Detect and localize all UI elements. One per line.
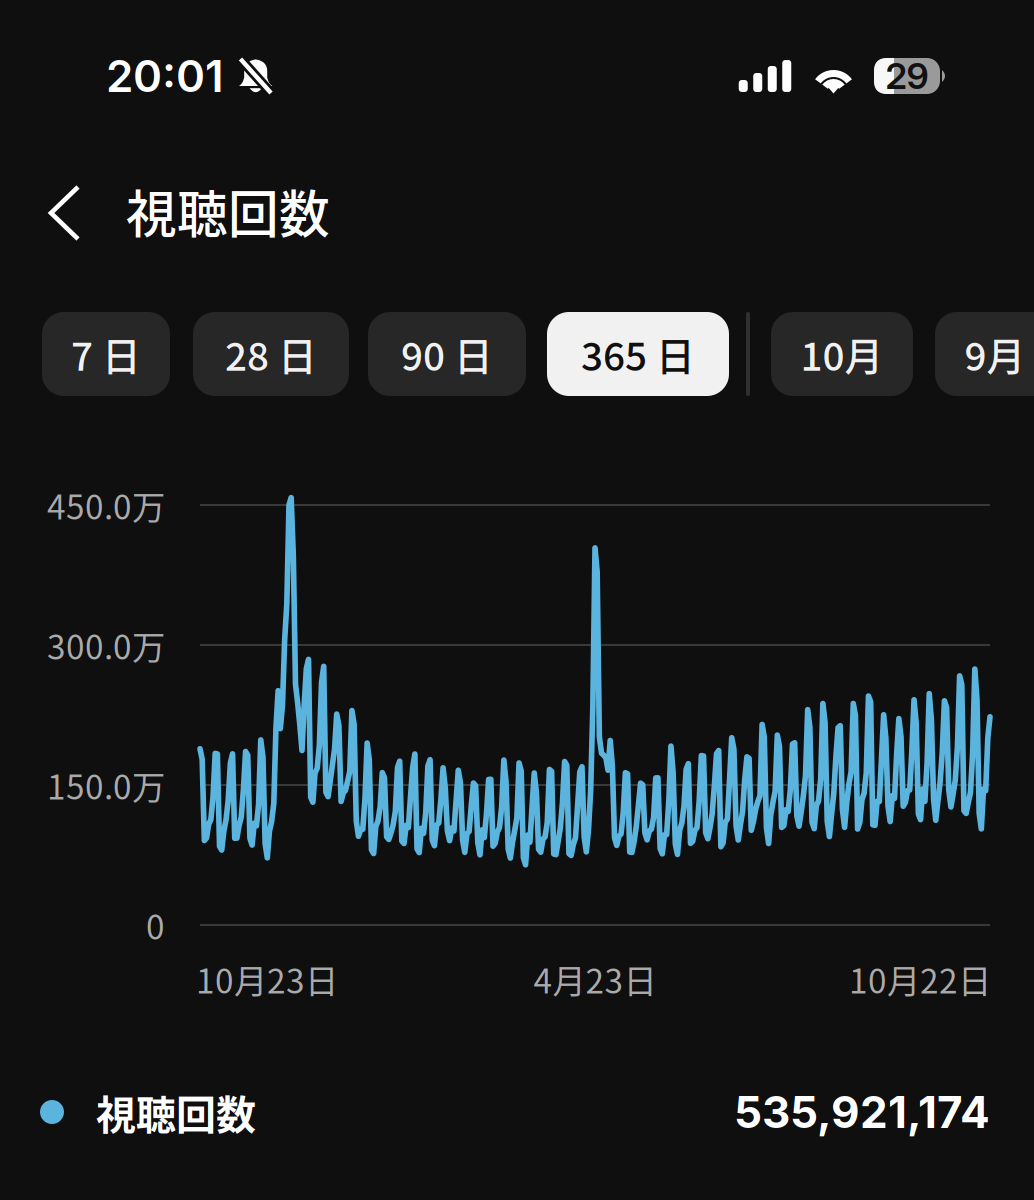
staticText: 9月 bbox=[964, 326, 1025, 382]
staticText: 29 bbox=[885, 54, 928, 98]
button[interactable]: Back bbox=[38, 178, 104, 244]
staticText: 10月22日 bbox=[849, 955, 991, 1003]
staticText: 視聴回数 bbox=[126, 174, 330, 248]
button[interactable]: 365 日 bbox=[547, 312, 729, 396]
button[interactable]: 10月 bbox=[771, 312, 913, 396]
staticText: 10月 bbox=[800, 326, 883, 382]
staticText: 10月23日 bbox=[196, 955, 338, 1003]
staticText: 20:01 bbox=[106, 49, 224, 103]
staticText: 365 日 bbox=[581, 326, 695, 382]
staticText: 300.0万 bbox=[47, 621, 165, 669]
staticText: 28 日 bbox=[225, 326, 317, 382]
button[interactable]: 28 日 bbox=[193, 312, 349, 396]
staticText: 視聴回数 bbox=[96, 1083, 256, 1141]
staticText: 450.0万 bbox=[47, 481, 165, 529]
button[interactable]: 7 日 bbox=[42, 312, 170, 396]
staticText: 4月23日 bbox=[533, 955, 656, 1003]
staticText: 0 bbox=[146, 901, 165, 949]
staticText: 90 日 bbox=[401, 326, 493, 382]
button[interactable]: 9月 bbox=[935, 312, 1034, 396]
staticText: 7 日 bbox=[71, 326, 141, 382]
staticText: 535,921,174 bbox=[734, 1085, 990, 1139]
staticText: 150.0万 bbox=[47, 761, 165, 809]
button[interactable]: 90 日 bbox=[368, 312, 526, 396]
